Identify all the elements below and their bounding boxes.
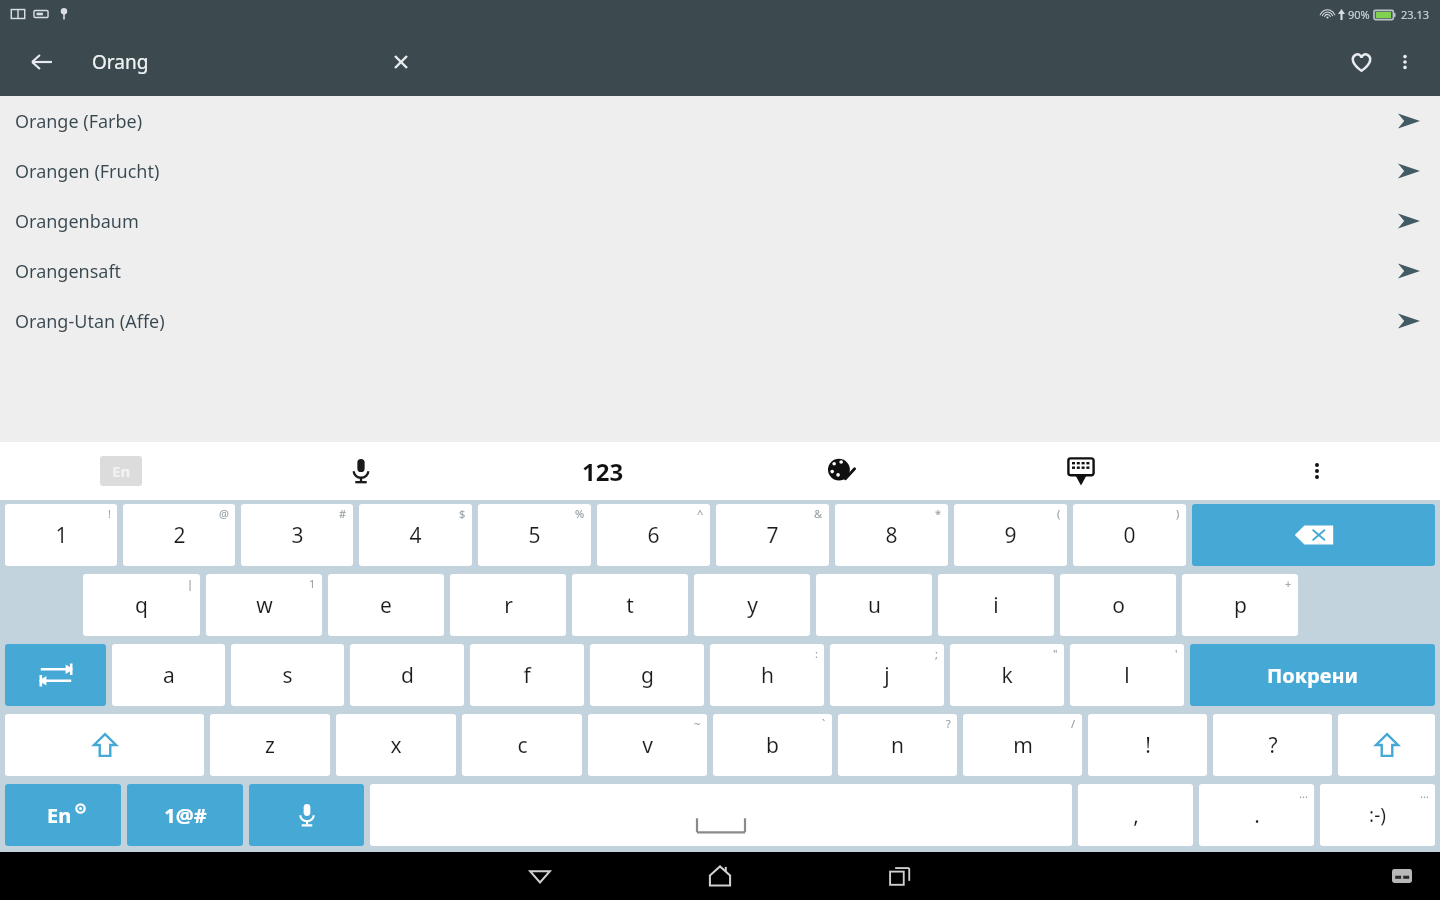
- button[interactable]: Orangen (Frucht): [0, 146, 1440, 196]
- button[interactable]: m: [963, 714, 1082, 776]
- button[interactable]: b: [713, 714, 832, 776]
- button[interactable]: 7: [716, 504, 829, 566]
- staticText: q: [135, 591, 148, 620]
- button[interactable]: 3: [241, 504, 353, 566]
- button[interactable]: Orange (Farbe): [0, 96, 1440, 146]
- staticText: ): [1176, 506, 1180, 521]
- button[interactable]: a: [112, 644, 225, 706]
- button[interactable]: k: [950, 644, 1064, 706]
- staticText: x: [390, 731, 402, 760]
- button[interactable]: ,: [1078, 784, 1193, 846]
- button[interactable]: ?: [1213, 714, 1332, 776]
- button[interactable]: e: [328, 574, 444, 636]
- button[interactable]: y: [694, 574, 810, 636]
- staticText: ?: [946, 716, 951, 731]
- button[interactable]: d: [350, 644, 464, 706]
- button[interactable]: Backspace: [1192, 504, 1435, 566]
- button[interactable]: i: [938, 574, 1054, 636]
- button[interactable]: :-): [1320, 784, 1435, 846]
- button[interactable]: o: [1060, 574, 1176, 636]
- button[interactable]: Shift: [5, 714, 204, 776]
- staticText: m: [1013, 731, 1033, 760]
- button[interactable]: z: [210, 714, 330, 776]
- button[interactable]: Tab: [5, 644, 106, 706]
- staticText: .: [1254, 801, 1260, 830]
- button[interactable]: r: [450, 574, 566, 636]
- staticText: r: [504, 591, 513, 620]
- button[interactable]: q: [83, 574, 200, 636]
- staticText: !: [1145, 731, 1151, 760]
- button[interactable]: More options: [1384, 41, 1426, 83]
- button[interactable]: Home: [660, 852, 780, 900]
- button[interactable]: l: [1070, 644, 1184, 706]
- staticText: ~: [694, 716, 701, 731]
- button[interactable]: Покрени: [1190, 644, 1435, 706]
- button[interactable]: Clear text: [378, 39, 424, 85]
- button[interactable]: Hide keyboard: [1054, 444, 1108, 498]
- button[interactable]: p: [1182, 574, 1298, 636]
- button[interactable]: Orangenbaum: [0, 196, 1440, 246]
- staticText: t: [626, 591, 634, 620]
- button[interactable]: Switch keyboard: [1382, 856, 1422, 896]
- staticText: %: [575, 506, 585, 521]
- staticText: 3: [291, 521, 304, 550]
- button[interactable]: En: [100, 456, 142, 486]
- staticText: 23.13: [1401, 7, 1430, 22]
- button[interactable]: g: [590, 644, 704, 706]
- button[interactable]: h: [710, 644, 824, 706]
- staticText: y: [747, 591, 758, 620]
- button[interactable]: Back: [480, 852, 600, 900]
- button[interactable]: Recent apps: [840, 852, 960, 900]
- staticText: #: [339, 506, 347, 521]
- button[interactable]: Language settings: [5, 784, 121, 846]
- staticText: 6: [647, 521, 660, 550]
- staticText: h: [761, 661, 774, 690]
- button[interactable]: n: [838, 714, 957, 776]
- button[interactable]: Insert Orangensaft: [1386, 248, 1432, 294]
- button[interactable]: 9: [954, 504, 1067, 566]
- button[interactable]: j: [830, 644, 944, 706]
- staticText: f: [523, 661, 531, 690]
- button[interactable]: t: [572, 574, 688, 636]
- button[interactable]: 1@#: [127, 784, 243, 846]
- button[interactable]: c: [462, 714, 582, 776]
- button[interactable]: 123: [556, 449, 650, 493]
- button[interactable]: x: [336, 714, 456, 776]
- button[interactable]: Add to favorites: [1338, 39, 1384, 85]
- staticText: a: [163, 661, 175, 690]
- button[interactable]: Space: [370, 784, 1072, 846]
- button[interactable]: u: [816, 574, 932, 636]
- button[interactable]: Insert Orang-Utan (Affe): [1386, 298, 1432, 344]
- staticText: d: [401, 661, 414, 690]
- button[interactable]: !: [1088, 714, 1207, 776]
- button[interactable]: Insert Orangenbaum: [1386, 198, 1432, 244]
- button[interactable]: Back: [18, 38, 66, 86]
- staticText: 9: [1004, 521, 1017, 550]
- staticText: Покрени: [1267, 662, 1358, 689]
- button[interactable]: Orangensaft: [0, 246, 1440, 296]
- button[interactable]: 4: [359, 504, 472, 566]
- button[interactable]: v: [588, 714, 707, 776]
- button[interactable]: 5: [478, 504, 591, 566]
- button[interactable]: 8: [835, 504, 948, 566]
- button[interactable]: Voice input: [336, 446, 386, 496]
- button[interactable]: 0: [1073, 504, 1186, 566]
- button[interactable]: Theme: [816, 445, 868, 497]
- staticText: ;: [935, 646, 938, 661]
- button[interactable]: Insert Orange (Farbe): [1386, 98, 1432, 144]
- button[interactable]: 1: [5, 504, 117, 566]
- button[interactable]: More keyboard options: [1294, 448, 1340, 494]
- button[interactable]: .: [1199, 784, 1314, 846]
- button[interactable]: Voice input: [249, 784, 364, 846]
- button[interactable]: s: [231, 644, 344, 706]
- staticText: |: [187, 576, 194, 591]
- staticText: ": [1053, 646, 1058, 661]
- button[interactable]: f: [470, 644, 584, 706]
- staticText: :-): [1369, 802, 1386, 828]
- button[interactable]: Insert Orangen (Frucht): [1386, 148, 1432, 194]
- button[interactable]: Shift: [1338, 714, 1435, 776]
- button[interactable]: 6: [597, 504, 710, 566]
- button[interactable]: 2: [123, 504, 235, 566]
- button[interactable]: w: [206, 574, 322, 636]
- button[interactable]: Orang-Utan (Affe): [0, 296, 1440, 346]
